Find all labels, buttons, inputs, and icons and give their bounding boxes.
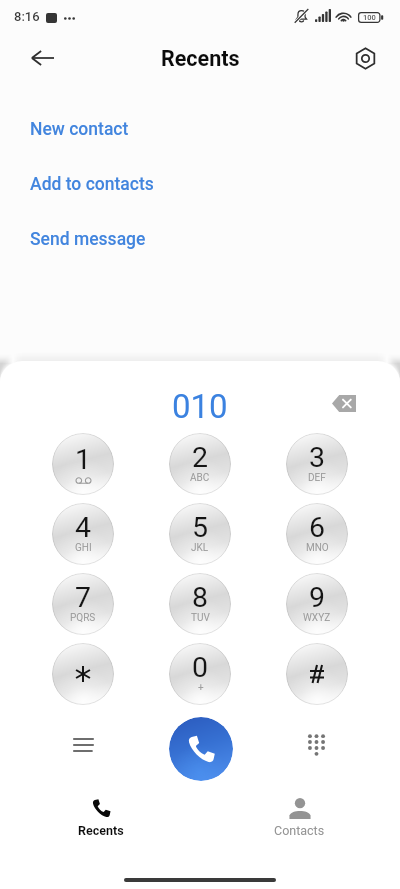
button[interactable]: 7: [52, 573, 114, 635]
button[interactable]: 3: [286, 433, 348, 495]
button[interactable]: 4: [52, 503, 114, 565]
button[interactable]: 8: [169, 573, 231, 635]
staticText: DEF: [308, 472, 326, 484]
staticText: 9: [309, 581, 326, 614]
button[interactable]: 0: [169, 643, 231, 705]
button[interactable]: Recents: [51, 792, 151, 848]
staticText: Send message: [30, 229, 146, 250]
staticText: Contacts: [274, 823, 325, 838]
button[interactable]: [52, 643, 114, 705]
staticText: 1: [75, 443, 92, 476]
staticText: Add to contacts: [30, 174, 154, 195]
staticText: 8:16: [14, 9, 40, 24]
button[interactable]: Menu: [61, 723, 105, 767]
button[interactable]: Back: [20, 34, 64, 82]
staticText: ABC: [190, 472, 210, 484]
staticText: Recents: [161, 46, 240, 71]
button[interactable]: 2: [169, 433, 231, 495]
button[interactable]: 1: [52, 433, 114, 495]
staticText: 100: [363, 13, 376, 22]
button[interactable]: Backspace: [322, 387, 366, 419]
staticText: MNO: [306, 542, 329, 554]
staticText: +: [198, 682, 204, 694]
button[interactable]: [286, 643, 348, 705]
button[interactable]: Keypad: [294, 723, 338, 767]
button[interactable]: 6: [286, 503, 348, 565]
button[interactable]: Settings: [343, 34, 387, 82]
button[interactable]: Add to contacts: [30, 165, 154, 203]
staticText: JKL: [191, 542, 209, 554]
staticText: 2: [192, 441, 209, 474]
staticText: 7: [75, 581, 92, 614]
staticText: 0: [192, 651, 209, 684]
button[interactable]: 9: [286, 573, 348, 635]
staticText: PQRS: [70, 612, 96, 624]
staticText: New contact: [30, 119, 129, 140]
staticText: 8: [192, 581, 209, 614]
staticText: 4: [75, 511, 92, 544]
staticText: Recents: [78, 823, 124, 838]
button[interactable]: 5: [169, 503, 231, 565]
button[interactable]: New contact: [30, 110, 129, 148]
staticText: 5: [192, 511, 209, 544]
staticText: TUV: [191, 612, 210, 624]
button[interactable]: Contacts: [249, 792, 349, 848]
staticText: WXYZ: [303, 612, 331, 624]
staticText: GHI: [75, 542, 92, 554]
button[interactable]: Send message: [30, 220, 146, 258]
staticText: 6: [309, 511, 326, 544]
staticText: 010: [172, 387, 228, 426]
button[interactable]: Call: [169, 717, 233, 781]
staticText: 3: [309, 441, 326, 474]
